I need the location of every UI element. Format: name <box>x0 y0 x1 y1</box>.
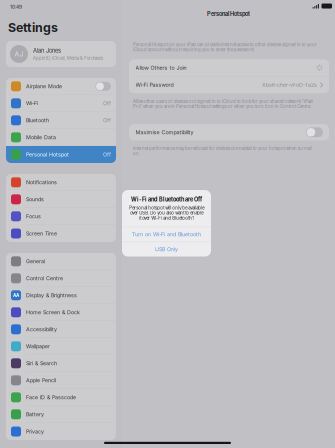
button[interactable] <box>6 129 116 146</box>
button[interactable] <box>6 78 116 95</box>
staticText: Accessibility <box>26 326 57 333</box>
button[interactable]: Allow Others to Join <box>129 59 329 76</box>
button[interactable]: AA <box>6 287 116 304</box>
button[interactable] <box>6 270 116 287</box>
staticText: Wi-Fi <box>26 100 38 107</box>
button[interactable] <box>6 208 116 225</box>
staticText: Bluetooth <box>26 117 49 124</box>
button[interactable] <box>6 225 116 242</box>
button[interactable] <box>6 389 116 406</box>
staticText: Wi-Fi Password <box>135 82 173 88</box>
button[interactable]: Maximise Compatibility <box>129 124 329 140</box>
staticText: Personal Hotspot <box>207 11 250 17</box>
staticText: Face ID & Passcode <box>26 394 76 401</box>
staticText: 10:49 <box>10 4 22 10</box>
button[interactable] <box>6 321 116 338</box>
staticText: Screen Time <box>26 230 57 237</box>
staticText: Wi-Fi and Bluetooth are Off <box>131 196 202 203</box>
staticText: Apple ID, iCloud, Media & Purchases <box>33 56 103 61</box>
staticText: Siri & Search <box>26 360 57 367</box>
staticText: Focus <box>26 213 41 220</box>
staticText: Maximise Compatibility <box>135 129 193 136</box>
button[interactable] <box>6 355 116 372</box>
button[interactable]: AJ <box>6 41 116 67</box>
button[interactable] <box>6 191 116 208</box>
staticText: General <box>26 258 45 265</box>
staticText: Personal Hotspot on your iPad can provid… <box>133 42 317 52</box>
staticText: Internet performance may be reduced for … <box>133 146 312 156</box>
staticText: Sounds <box>26 196 44 203</box>
staticText: Notifications <box>26 179 57 186</box>
button[interactable] <box>6 304 116 321</box>
button[interactable]: Wi-Fi Password <box>129 76 329 93</box>
button[interactable] <box>6 112 116 129</box>
staticText: Alan Jones <box>33 47 61 54</box>
button[interactable] <box>6 174 116 191</box>
button[interactable] <box>6 406 116 423</box>
staticText: AJ <box>14 50 23 58</box>
staticText: AA <box>13 293 19 298</box>
button[interactable]: USB Only <box>122 242 211 257</box>
button[interactable]: Turn on Wi-Fi and Bluetooth <box>122 227 211 242</box>
staticText: Mobile Data <box>26 134 56 141</box>
button[interactable] <box>6 95 116 112</box>
staticText: Airplane Mode <box>26 83 62 90</box>
button[interactable] <box>6 253 116 270</box>
staticText: Personal hotspot will only be available … <box>129 205 204 221</box>
staticText: Battery <box>26 411 44 418</box>
staticText: Off <box>103 151 111 158</box>
button[interactable] <box>6 423 116 440</box>
staticText: Allow other users or devices not signed … <box>133 99 313 109</box>
staticText: Display & Brightness <box>26 292 77 299</box>
staticText: Turn on Wi-Fi and Bluetooth <box>132 231 201 238</box>
staticText: Home Screen & Dock <box>26 309 80 316</box>
staticText: USB Only <box>155 246 178 253</box>
staticText: Off <box>103 117 111 124</box>
staticText: Personal Hotspot <box>26 151 69 158</box>
staticText: Off <box>103 100 111 107</box>
staticText: Wallpaper <box>26 343 50 350</box>
staticText: Apple Pencil <box>26 377 56 384</box>
staticText: XbsK-cher-vFoD-Ta2s <box>262 82 317 88</box>
button[interactable] <box>6 372 116 389</box>
button[interactable] <box>6 338 116 355</box>
button[interactable] <box>6 146 116 163</box>
staticText: Settings <box>8 20 58 35</box>
staticText: Allow Others to Join <box>135 64 186 71</box>
staticText: Privacy <box>26 428 44 435</box>
staticText: Control Centre <box>26 275 63 282</box>
